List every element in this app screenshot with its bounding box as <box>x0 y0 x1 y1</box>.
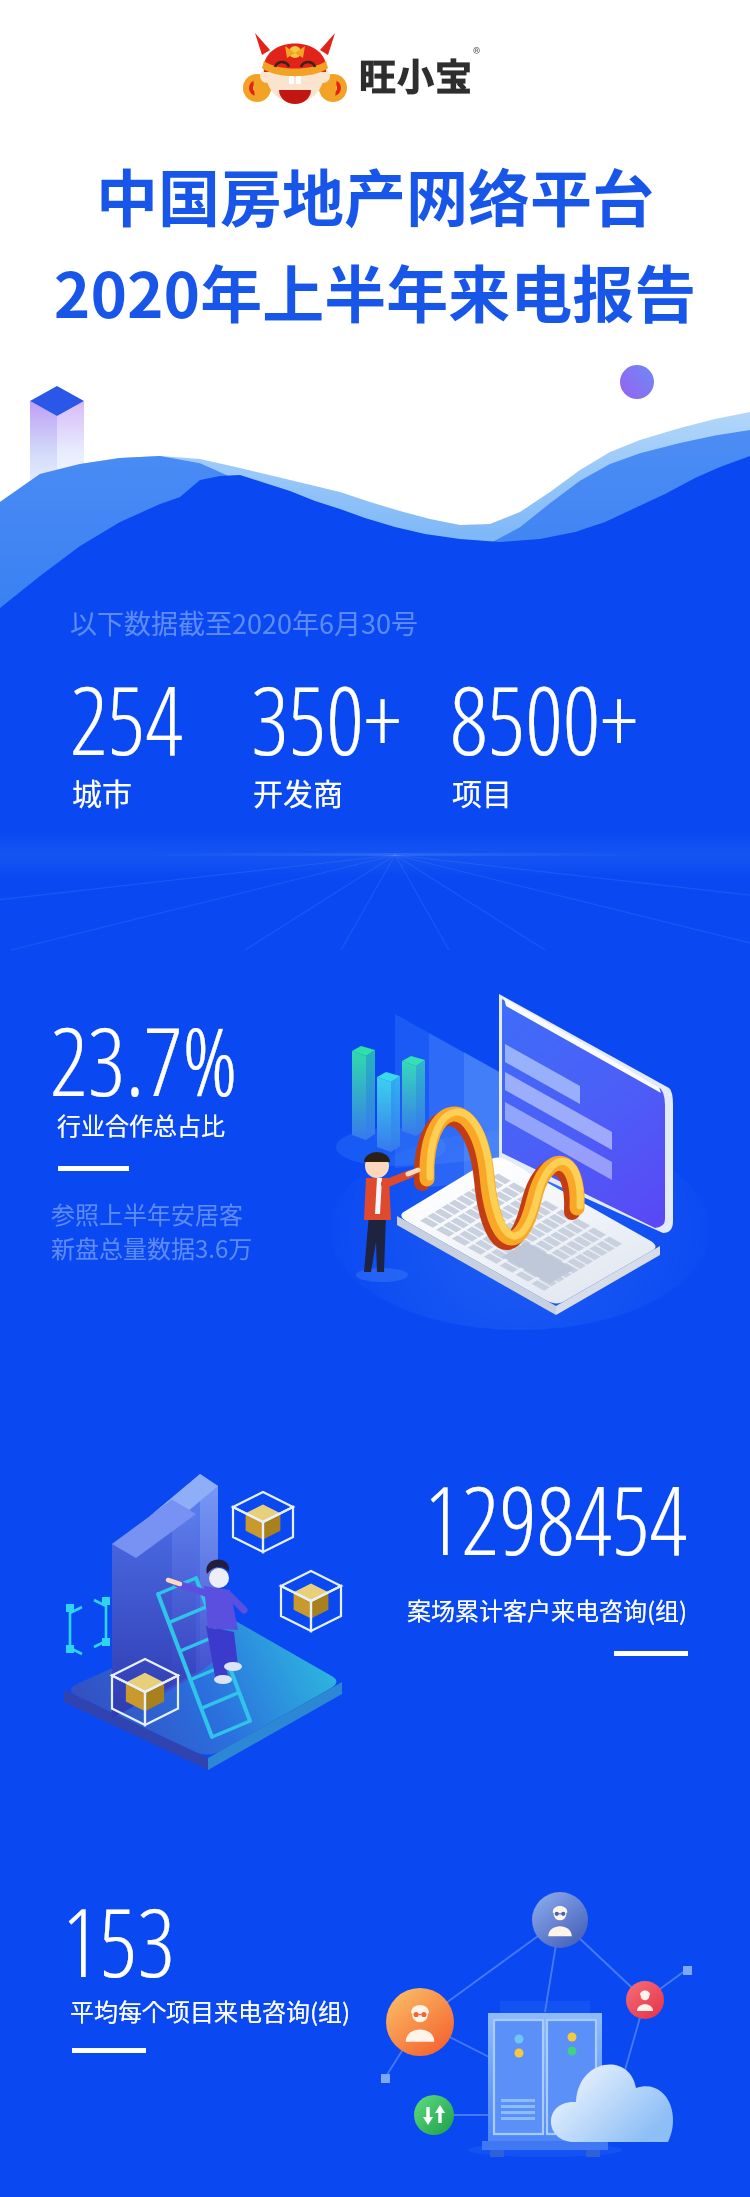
staticText: 以下数据截至2020年6月30号 <box>70 603 418 642</box>
staticText: 参照上半年安居客 新盘总量数据3.6万 <box>51 1196 253 1265</box>
staticText: 开发商 <box>253 770 343 813</box>
staticText: 2020年上半年来电报告 <box>0 246 750 336</box>
staticText: 23.7% <box>50 996 238 1124</box>
staticText: 254 <box>70 655 183 783</box>
staticText: 中国房地产网络平台 <box>0 150 750 240</box>
staticText: 平均每个项目来电咨询(组) <box>70 1993 351 2028</box>
staticText: 8500+ <box>450 655 638 783</box>
staticText: 1298454 <box>424 1455 688 1583</box>
staticText: 行业合作总占比 <box>57 1107 225 1142</box>
staticText: ® <box>473 42 481 64</box>
staticText: 旺小宝 <box>359 48 473 102</box>
staticText: 项目 <box>452 770 512 813</box>
staticText: 案场累计客户来电咨询(组) <box>407 1592 688 1627</box>
staticText: 城市 <box>72 770 132 813</box>
staticText: 153 <box>62 1877 175 2005</box>
staticText: 350+ <box>251 655 402 783</box>
